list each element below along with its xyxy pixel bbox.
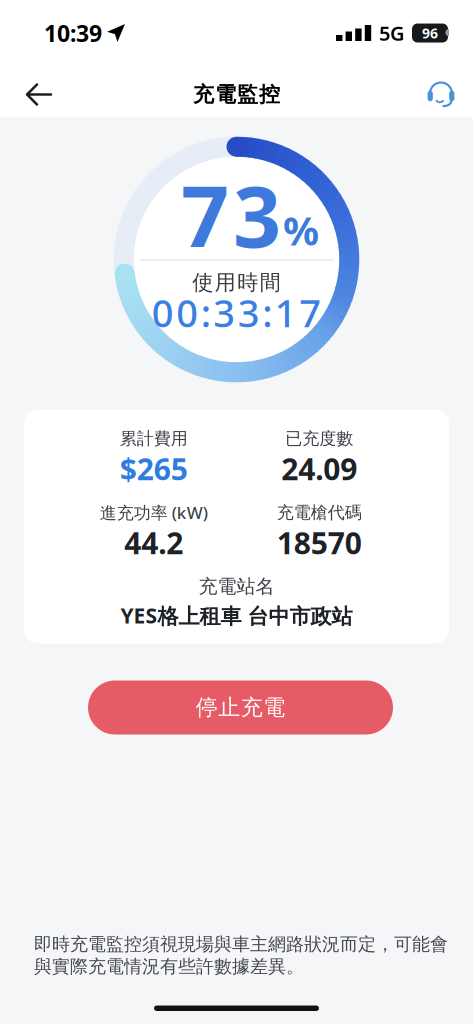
staticText: 5G xyxy=(379,20,405,46)
staticText: 進充功率 (kW) xyxy=(100,501,208,524)
button[interactable]: Back xyxy=(0,75,52,113)
staticText: 充電站名 xyxy=(198,575,274,598)
staticText: $265 xyxy=(120,449,188,488)
staticText: 即時充電監控須視現場與車主網路狀況而定，可能會 xyxy=(34,933,448,955)
staticText: YES格上租車 台中市政站 xyxy=(120,601,352,629)
staticText: 44.2 xyxy=(124,523,183,562)
staticText: 充電槍代碼 xyxy=(277,502,362,523)
button[interactable]: Customer service xyxy=(424,73,473,115)
staticText: 已充度數 xyxy=(285,428,353,449)
staticText: 96 xyxy=(422,24,438,42)
staticText: 73 xyxy=(181,159,281,271)
staticText: 與實際充電情況有些許數據差異。 xyxy=(34,955,304,977)
staticText: % xyxy=(283,203,319,256)
staticText: 10:39 xyxy=(44,18,102,48)
staticText: 充電監控 xyxy=(193,82,280,107)
button[interactable]: 停止充電 xyxy=(88,680,393,734)
staticText: 使用時間 xyxy=(192,270,281,295)
staticText: 18570 xyxy=(277,523,362,562)
staticText: 24.09 xyxy=(281,449,357,488)
staticText: 停止充電 xyxy=(196,694,285,721)
staticText: 累計費用 xyxy=(120,428,188,449)
staticText: 00:33:17 xyxy=(152,287,321,338)
